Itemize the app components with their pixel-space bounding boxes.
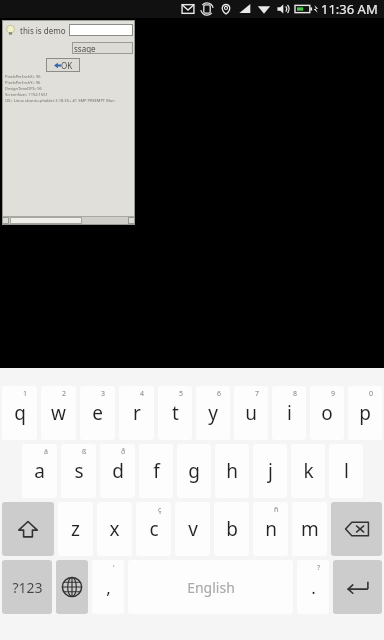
staticText: f [153,458,160,484]
staticText: OS= Linux ubuntu-phablet 3.18.35+ #1 SMP… [5,98,115,104]
staticText: m [301,516,319,542]
staticText: 0 [369,389,374,399]
button[interactable]: ' [92,560,124,614]
staticText: g [188,458,200,484]
button[interactable]: 7 [234,386,268,440]
button[interactable]: ð [100,444,135,498]
button[interactable]: OK [46,58,80,72]
staticText: w [51,400,66,426]
button[interactable]: Backspace [331,502,382,556]
button[interactable]: m [292,502,327,556]
staticText: l [344,458,349,484]
staticText: 1 [23,389,28,399]
staticText: x [109,516,120,542]
staticText: 3 [101,389,106,399]
button[interactable]: j [253,444,287,498]
staticText: c [149,516,159,542]
button[interactable]: ä [22,444,57,498]
staticText: ß [82,447,87,457]
staticText: 11:36 AM [321,0,378,18]
staticText: a [34,458,45,484]
staticText: 8 [293,389,298,399]
staticText: 2 [62,389,67,399]
button[interactable]: h [215,444,249,498]
button[interactable]: v [175,502,210,556]
button[interactable]: f [139,444,173,498]
staticText: English [187,578,235,597]
staticText: ä [44,447,48,457]
button[interactable]: 5 [158,386,192,440]
staticText: 6 [217,389,222,399]
staticText: o [321,400,333,426]
staticText: PixelsPerInchX= 96 [5,74,41,80]
button[interactable]: 6 [196,386,230,440]
staticText: n [265,516,277,542]
staticText: DesignTimeDPI= 96 [5,86,42,92]
staticText: b [226,516,238,542]
button[interactable]: 9 [310,386,344,440]
staticText: 7 [255,389,260,399]
staticText: k [303,458,314,484]
staticText: 5 [179,389,184,399]
staticText: ScreenSize= 1152:1651 [5,92,48,98]
button[interactable]: l [329,444,363,498]
button[interactable]: 0 [348,386,382,440]
button[interactable]: 4 [119,386,154,440]
button[interactable]: ? [297,560,329,614]
staticText: t [172,400,179,426]
staticText: d [112,458,124,484]
button[interactable]: b [214,502,249,556]
button[interactable]: ñ [253,502,288,556]
staticText: ?123 [12,578,43,597]
staticText: r [133,400,141,426]
staticText: h [226,458,238,484]
staticText: q [14,400,26,426]
button[interactable]: 2 [41,386,76,440]
staticText: u [245,400,257,426]
button[interactable]: x [97,502,132,556]
button[interactable]: ß [61,444,96,498]
button[interactable]: 3 [80,386,115,440]
staticText: s [74,458,84,484]
staticText: 4 [140,389,145,399]
staticText: ? [317,563,321,573]
staticText: z [71,516,80,542]
staticText: ssage [74,43,96,54]
button[interactable]: Shift [2,502,54,556]
button[interactable]: 8 [272,386,306,440]
staticText: OK [61,60,73,71]
staticText: ñ [274,505,279,515]
staticText: PixelsPerInchY= 96 [5,80,41,86]
staticText: ç [158,505,162,515]
staticText: p [359,400,371,426]
staticText: ð [121,447,126,457]
button[interactable]: Change language [56,560,88,614]
button[interactable]: g [177,444,211,498]
button[interactable]: Enter [333,560,382,614]
staticText: this is demo [20,25,66,36]
button[interactable]: k [291,444,325,498]
staticText: 9 [331,389,336,399]
button[interactable]: ç [136,502,171,556]
staticText: , [106,576,111,599]
staticText: . [311,576,316,599]
staticText: ' [113,563,115,573]
staticText: i [287,400,292,426]
staticText: y [208,400,218,426]
button[interactable]: z [58,502,93,556]
staticText: v [188,516,198,542]
button[interactable]: ssage [72,42,133,54]
staticText: j [268,458,273,484]
button[interactable]: 1 [2,386,37,440]
button[interactable]: ?123 [2,560,52,614]
staticText: e [92,400,103,426]
button[interactable]: English [128,560,293,614]
